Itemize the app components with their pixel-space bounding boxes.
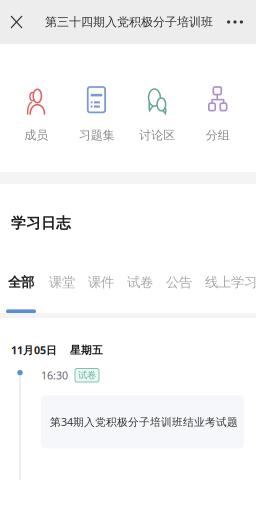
button[interactable]: 公告 xyxy=(166,274,192,339)
button[interactable]: More xyxy=(215,0,256,44)
staticText: 成员 xyxy=(24,128,48,143)
button[interactable]: 习题集 xyxy=(66,87,127,172)
button[interactable]: 课堂 xyxy=(49,274,75,339)
button[interactable]: 试卷 xyxy=(127,274,153,339)
button[interactable]: 全部 xyxy=(6,274,36,339)
staticText: 讨论区 xyxy=(139,128,175,143)
staticText: 公告 xyxy=(166,274,192,290)
staticText: 学习日志 xyxy=(11,214,71,232)
button[interactable]: 成员 xyxy=(6,87,66,172)
button[interactable]: 讨论区 xyxy=(127,87,187,172)
staticText: 分组 xyxy=(206,128,230,143)
staticText: 课件 xyxy=(88,274,114,290)
staticText: 16:30 xyxy=(41,368,68,382)
staticText: 课堂 xyxy=(49,274,75,290)
button[interactable]: 分组 xyxy=(187,87,248,172)
staticText: 第34期入党积极分子培训班结业考试题 xyxy=(50,415,238,429)
button[interactable]: 第34期入党积极分子培训班结业考试题 xyxy=(41,395,244,448)
staticText: 第三十四期入党积极分子培训班 xyxy=(45,15,213,29)
button[interactable]: Close xyxy=(0,0,30,44)
staticText: 试卷 xyxy=(78,369,96,381)
button[interactable]: 线上学习 xyxy=(205,274,256,339)
staticText: 线上学习 xyxy=(205,274,256,290)
staticText: 全部 xyxy=(8,274,34,290)
staticText: 11月05日 xyxy=(11,343,57,357)
staticText: 习题集 xyxy=(79,128,115,143)
button[interactable]: 课件 xyxy=(88,274,114,339)
staticText: 星期五 xyxy=(70,343,103,357)
staticText: 试卷 xyxy=(127,274,153,290)
